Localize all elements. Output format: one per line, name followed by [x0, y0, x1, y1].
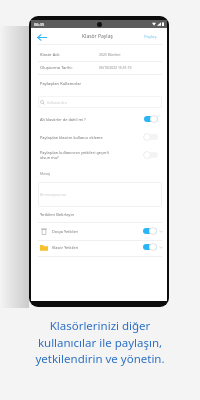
staticText: Klasörlerinizi diğer kullanıcılar ile pa… [0, 318, 200, 366]
button[interactable]: Alt klasörler de dahil mi ? [40, 112, 158, 126]
staticText: Klasör Yetkileri [52, 245, 79, 250]
staticText: Oluşturma Tarihi: [40, 65, 99, 70]
staticText: Kullanıcı Ara [47, 100, 67, 105]
staticText: Klasör Paylaş [82, 33, 113, 40]
button[interactable]: Back [35, 31, 48, 44]
staticText: Bir mesajınız var [40, 192, 67, 197]
staticText: Klasör Adı: [40, 52, 99, 57]
staticText: Yetkileri Belirleyin [40, 212, 75, 218]
staticText: Paylaşılan kullanıcının yetkileri geçerl… [40, 150, 143, 160]
button[interactable]: Paylaşılan klasöre kullanıcı ekleme [40, 130, 158, 144]
staticText: Paylaş [144, 34, 157, 40]
button[interactable]: Bir mesajınız var [38, 182, 162, 207]
button[interactable]: Paylaşılan kullanıcının yetkileri geçerl… [40, 148, 158, 162]
button[interactable]: Dosya Yetkileri [40, 224, 163, 238]
staticText: Alt klasörler de dahil mi ? [40, 117, 143, 122]
staticText: Paylaşılan Kullanıcılar [40, 81, 82, 87]
button[interactable]: Paylaş [139, 30, 161, 43]
button[interactable]: Kullanıcı Ara [40, 96, 162, 108]
staticText: 06/10/2023 15:51:19 [99, 65, 132, 70]
button[interactable]: Klasör Yetkileri [40, 240, 163, 254]
staticText: 2023 Ekimleri [99, 52, 121, 57]
staticText: 06:35 [34, 22, 45, 27]
staticText: Mesaj [40, 171, 50, 176]
staticText: Paylaşılan klasöre kullanıcı ekleme [40, 135, 143, 140]
staticText: Dosya Yetkileri [52, 229, 79, 234]
